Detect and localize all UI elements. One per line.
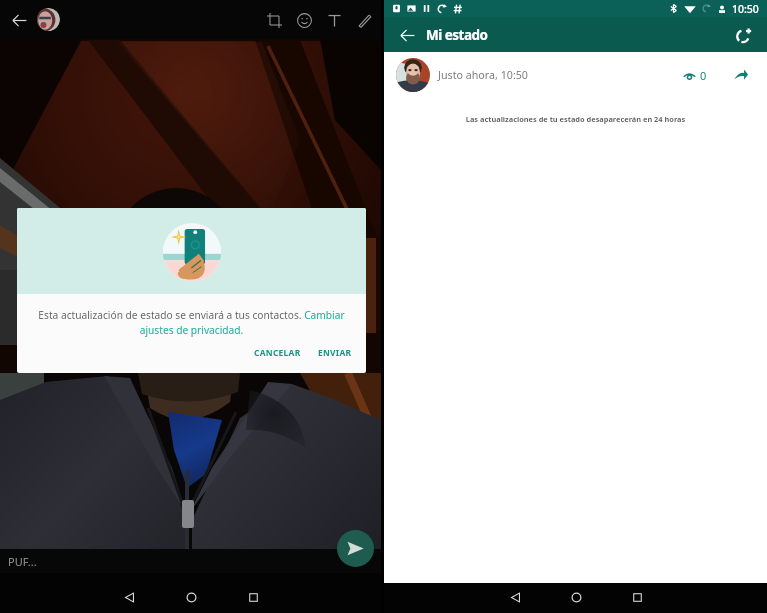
button[interactable]: CANCELAR [248, 342, 307, 363]
staticText: CANCELAR [254, 347, 301, 358]
staticText: PUF... [8, 554, 37, 569]
button[interactable]: Recents [238, 582, 268, 612]
staticText: Esta actualización de estado se enviará … [37, 308, 346, 337]
button[interactable]: Emoji [289, 5, 319, 35]
staticText: Las actualizaciones de tu estado desapar… [384, 114, 767, 124]
button[interactable]: Text [319, 5, 349, 35]
button[interactable]: Justo ahora, 10:50 [384, 52, 767, 98]
staticText: 10:50 [732, 2, 759, 16]
button[interactable]: Home [176, 582, 206, 612]
button[interactable]: Send [337, 530, 374, 567]
button[interactable]: Back [3, 4, 35, 36]
staticText: Mi estado [426, 26, 488, 44]
button[interactable]: Recents [622, 583, 652, 612]
button[interactable]: Crop [259, 5, 289, 35]
button[interactable]: Add status [728, 20, 758, 50]
button[interactable]: Profile [37, 8, 60, 31]
staticText: Justo ahora, 10:50 [438, 68, 528, 83]
button[interactable]: Draw [349, 5, 379, 35]
button[interactable]: Back [392, 20, 422, 50]
staticText: ENVIAR [318, 347, 352, 358]
button[interactable]: Home [561, 583, 591, 612]
button[interactable]: Back [114, 582, 144, 612]
staticText: 0 [700, 68, 707, 83]
button[interactable]: Forward [729, 63, 753, 87]
button[interactable]: ENVIAR [312, 342, 358, 363]
button[interactable]: Back [500, 583, 530, 612]
